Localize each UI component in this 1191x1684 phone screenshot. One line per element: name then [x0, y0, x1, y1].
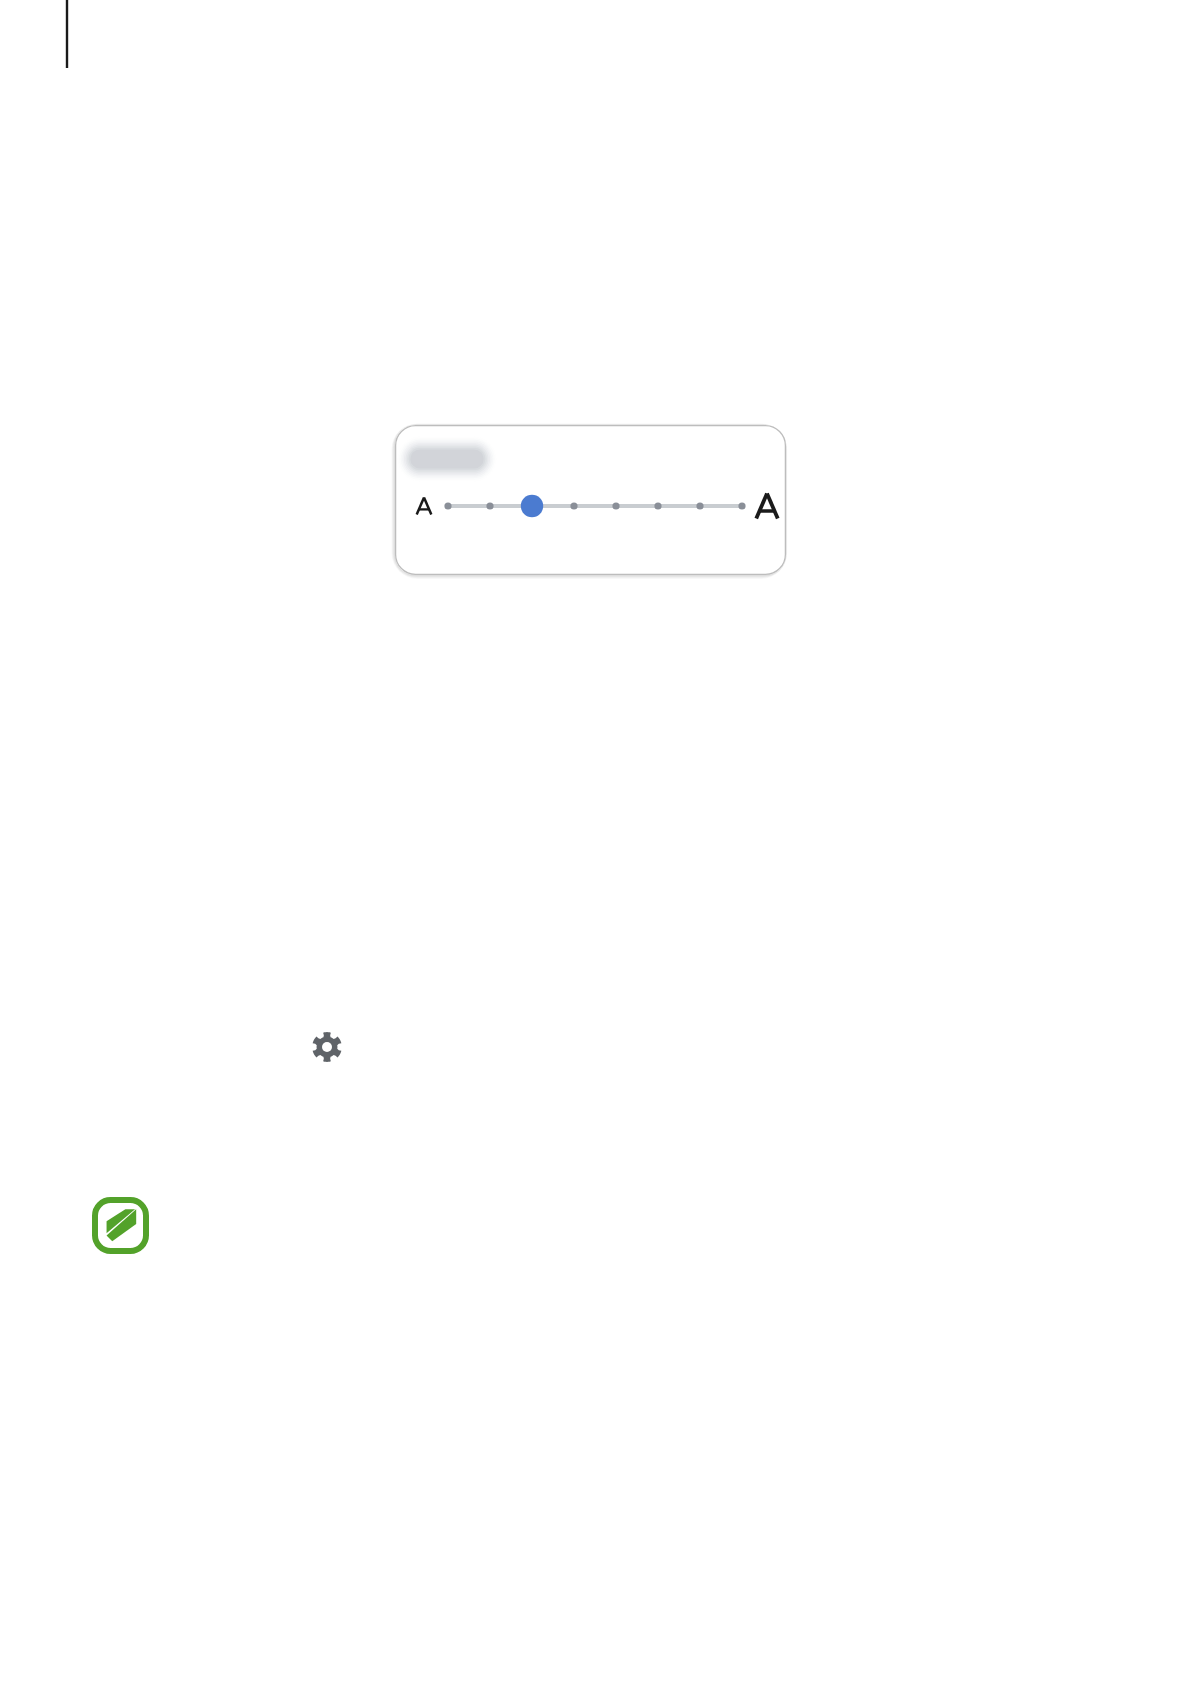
button[interactable]: Settings — [311, 1031, 343, 1063]
button[interactable]: Samsung Notes — [92, 1197, 149, 1254]
button[interactable]: Font size — [395, 425, 786, 575]
